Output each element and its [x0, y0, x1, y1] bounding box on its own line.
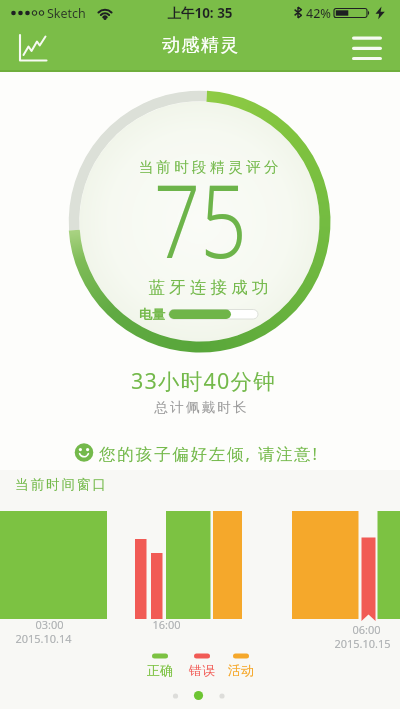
staticText: 活动	[228, 662, 254, 678]
staticText: 06:00	[352, 622, 381, 637]
staticText: 蓝牙连接成功	[148, 277, 273, 298]
button[interactable]	[70, 437, 325, 463]
staticText: 2015.10.15	[334, 636, 391, 651]
staticText: 正确	[147, 662, 173, 678]
button[interactable]: 正确	[0, 0, 300, 16]
button[interactable]: 活动	[0, 0, 300, 16]
button[interactable]: 错误	[0, 0, 300, 16]
staticText: 2015.10.14	[15, 631, 72, 646]
staticText: 上午10: 35	[167, 4, 233, 22]
staticText: 动感精灵	[161, 34, 239, 57]
staticText: 75	[154, 149, 247, 288]
staticText: 错误	[189, 662, 215, 678]
staticText: 总计佩戴时长	[154, 399, 249, 416]
staticText: 电量	[139, 306, 165, 322]
button[interactable]	[168, 688, 184, 704]
staticText: 当前时段精灵评分	[138, 158, 282, 176]
staticText: 当前时间窗口	[14, 476, 107, 493]
staticText: 33小时40分钟	[131, 366, 276, 395]
button[interactable]	[10, 28, 54, 68]
button[interactable]	[214, 688, 230, 704]
staticText: 42%	[306, 5, 331, 22]
staticText: 03:00	[35, 617, 64, 632]
staticText: Sketch	[47, 5, 86, 22]
button[interactable]	[190, 687, 207, 704]
staticText: 16:00	[152, 617, 181, 632]
staticText: 您的孩子偏好左倾, 请注意!	[99, 442, 319, 465]
button[interactable]	[344, 30, 390, 68]
